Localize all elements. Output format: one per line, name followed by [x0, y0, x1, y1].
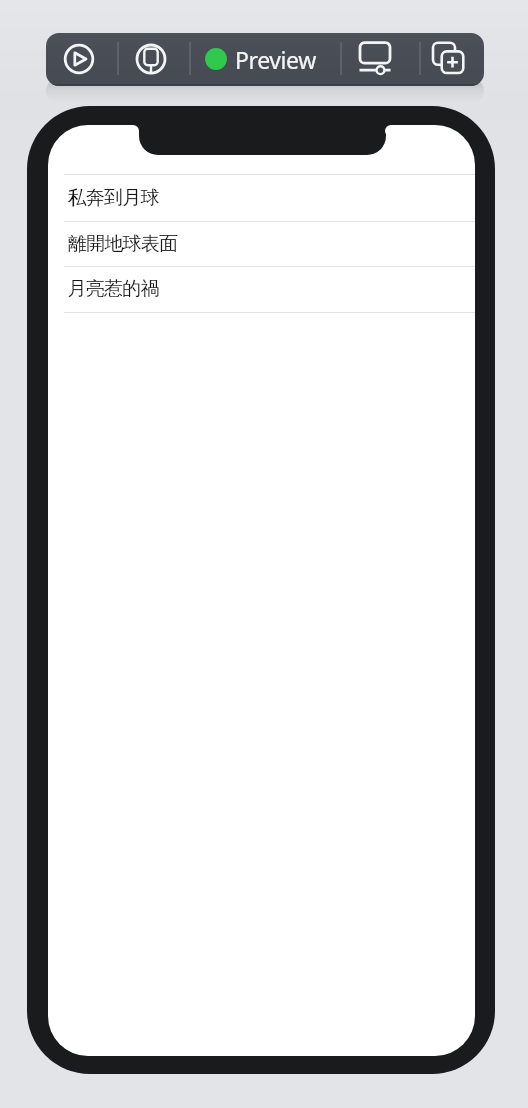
staticText: Preview — [235, 44, 316, 75]
button[interactable]: 離開地球表面 — [48, 221, 475, 267]
staticText: 離開地球表面 — [68, 232, 178, 256]
button[interactable] — [128, 36, 174, 82]
button[interactable] — [423, 35, 473, 81]
staticText: 私奔到月球 — [68, 186, 159, 210]
button[interactable] — [56, 36, 102, 82]
button[interactable]: 私奔到月球 — [48, 174, 475, 221]
staticText: 月亮惹的禍 — [68, 277, 159, 301]
button[interactable] — [353, 35, 397, 81]
button[interactable]: 月亮惹的禍 — [48, 266, 475, 312]
